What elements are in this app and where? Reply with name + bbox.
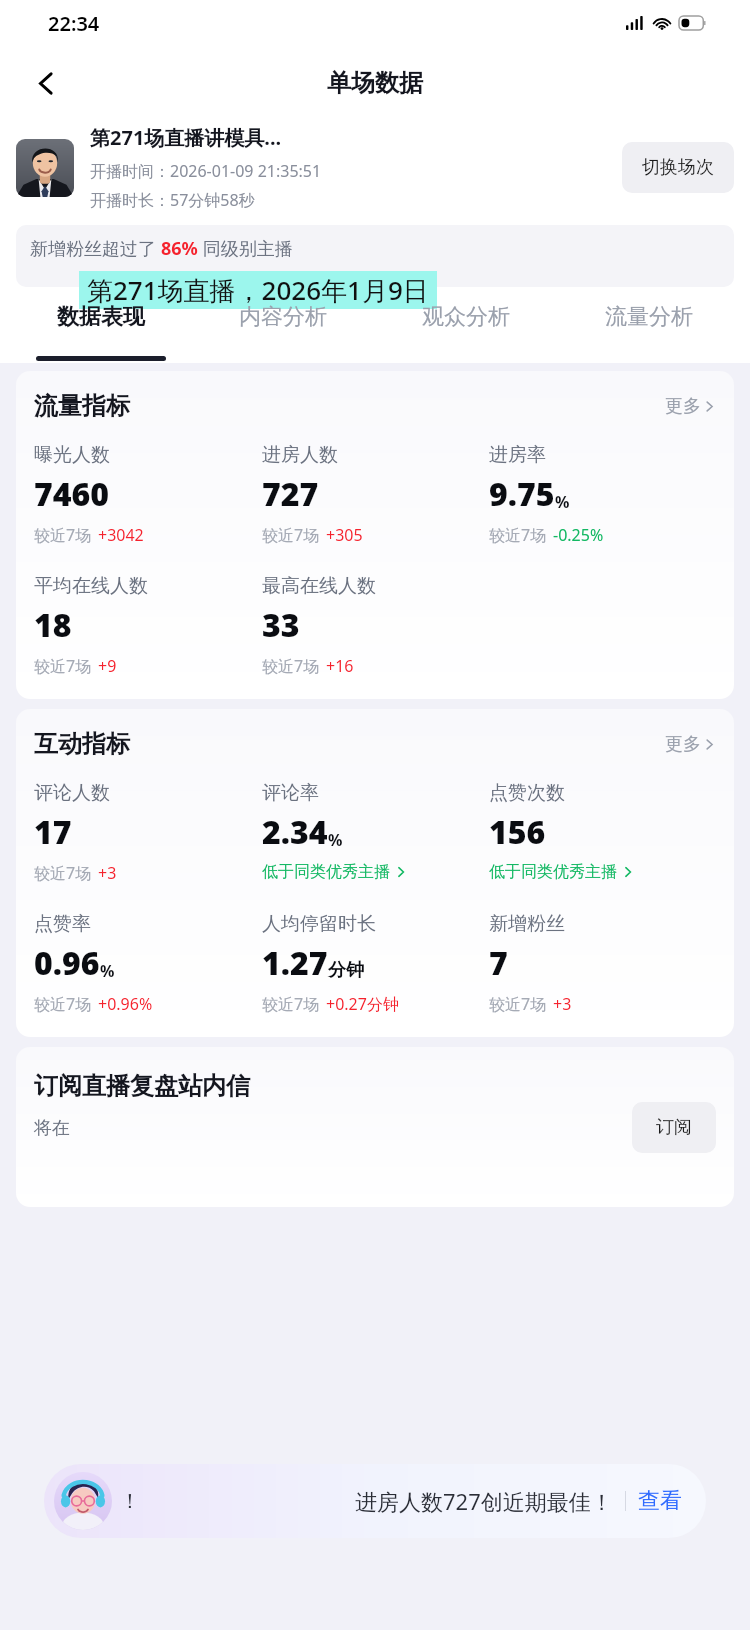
staticText: -0.25% (553, 524, 604, 546)
staticText: +9 (98, 655, 117, 677)
staticText: +3 (98, 862, 117, 884)
button[interactable]: 更多 (665, 733, 716, 756)
staticText: 727 (262, 472, 319, 516)
staticText: 点赞率 (34, 912, 91, 936)
staticText: 曝光人数 (34, 443, 110, 467)
staticText: +0.96% (98, 993, 153, 1015)
staticText: 流量分析 (605, 303, 693, 331)
staticText: 低于同类优秀主播 (489, 862, 617, 882)
staticText: 第271场直播，2026年1月9日 (87, 272, 429, 308)
staticText: 更多 (665, 395, 701, 418)
staticText: % (328, 829, 343, 851)
button[interactable]: 观众分析 (374, 303, 557, 363)
staticText: 0.96 (34, 941, 100, 985)
staticText: 评论率 (262, 781, 319, 805)
staticText: 内容分析 (239, 303, 327, 331)
staticText: 1.27 (262, 941, 328, 985)
staticText: 156 (489, 810, 546, 854)
staticText: 平均在线人数 (34, 574, 148, 598)
staticText: 2.34 (262, 810, 328, 854)
staticText: 17 (34, 810, 72, 854)
staticText: 较近7场 (262, 993, 320, 1015)
staticText: 数据表现 (57, 303, 145, 331)
staticText: +16 (326, 655, 354, 677)
staticText: 进房人数727创近期最佳！ (355, 1486, 613, 1516)
button[interactable]: 切换场次 (622, 142, 734, 193)
staticText: 7460 (34, 472, 110, 516)
staticText: 22:34 (48, 10, 100, 37)
staticText: 人均停留时长 (262, 912, 376, 936)
button[interactable]: 内容分析 (192, 303, 374, 363)
staticText: 进房人数 (262, 443, 338, 467)
button[interactable]: 数据表现 (10, 303, 192, 363)
staticText: 单场数据 (327, 68, 423, 98)
staticText: 观众分析 (422, 303, 510, 331)
staticText: 新增粉丝 (489, 912, 565, 936)
button[interactable]: 订阅 (632, 1102, 716, 1153)
button[interactable]: 低于同类优秀主播 (489, 862, 634, 882)
button[interactable]: 低于同类优秀主播 (262, 862, 407, 882)
staticText: 分钟 (328, 959, 364, 982)
staticText: 较近7场 (489, 524, 547, 546)
staticText: 开播时长：57分钟58秒 (90, 189, 255, 211)
staticText: 更多 (665, 733, 701, 756)
staticText: +3042 (98, 524, 144, 546)
staticText: 18 (34, 603, 72, 647)
staticText: 订阅 (656, 1116, 692, 1139)
button[interactable]: 流量分析 (557, 303, 740, 363)
staticText: 开播时间：2026-01-09 21:35:51 (90, 160, 322, 182)
staticText: 低于同类优秀主播 (262, 862, 390, 882)
staticText: 新增粉丝超过了 (30, 236, 161, 261)
staticText: +3 (553, 993, 572, 1015)
staticText: 查看 (638, 1487, 682, 1515)
staticText: 互动指标 (34, 729, 130, 759)
button[interactable]: 更多 (665, 395, 716, 418)
staticText: % (555, 491, 570, 513)
staticText: 点赞次数 (489, 781, 565, 805)
staticText: 第271场直播讲模具... (90, 124, 282, 151)
staticText: 较近7场 (262, 655, 320, 677)
staticText: +0.27分钟 (326, 993, 399, 1015)
staticText: 86% (161, 236, 198, 261)
button[interactable] (16, 139, 74, 197)
button[interactable]: 订阅直播复盘站内信 (16, 1047, 734, 1207)
staticText: ！ (120, 1489, 140, 1514)
staticText: +305 (326, 524, 363, 546)
staticText: 较近7场 (34, 862, 92, 884)
staticText: 较近7场 (34, 993, 92, 1015)
button[interactable]: ！ (44, 1464, 706, 1538)
staticText: 较近7场 (262, 524, 320, 546)
staticText: 较近7场 (34, 524, 92, 546)
button[interactable]: 新增粉丝超过了 (16, 225, 734, 287)
staticText: 流量指标 (34, 391, 130, 421)
staticText: 订阅直播复盘站内信 (34, 1071, 250, 1101)
staticText: 进房率 (489, 443, 546, 467)
staticText: 较近7场 (34, 655, 92, 677)
staticText: 33 (262, 603, 300, 647)
staticText: 将在 (34, 1117, 70, 1140)
staticText: % (100, 960, 115, 982)
staticText: 同级别主播 (198, 236, 293, 261)
staticText: 评论人数 (34, 781, 110, 805)
staticText: 最高在线人数 (262, 574, 376, 598)
staticText: 9.75 (489, 472, 555, 516)
button[interactable]: Back (18, 55, 74, 111)
staticText: 较近7场 (489, 993, 547, 1015)
button[interactable]: 查看 (638, 1487, 682, 1515)
staticText: 7 (489, 941, 508, 985)
staticText: 切换场次 (642, 156, 714, 179)
